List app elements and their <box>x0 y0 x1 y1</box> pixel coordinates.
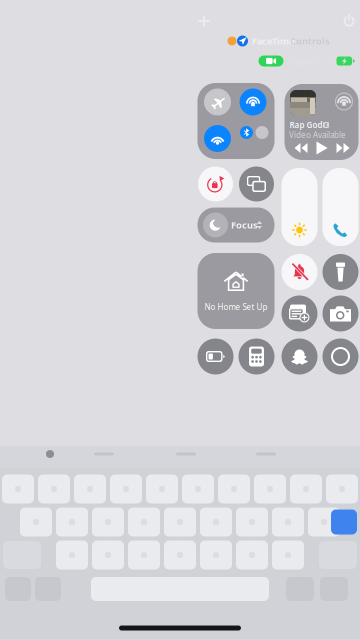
button[interactable]: Airplane Mode <box>204 88 231 115</box>
button[interactable]: Silent Mode <box>281 254 317 290</box>
button[interactable]: Screen Mirroring <box>239 166 274 201</box>
staticText: Video Available <box>289 130 346 140</box>
button[interactable]: AirDrop <box>239 88 266 115</box>
button[interactable]: Home — No Home Set Up <box>197 253 274 329</box>
button[interactable]: Play <box>316 141 327 154</box>
button[interactable]: Bluetooth <box>240 126 253 139</box>
button[interactable]: Screen Recording <box>322 338 358 374</box>
button[interactable]: Wi-Fi <box>204 125 231 152</box>
button[interactable]: Low Power Mode <box>197 338 233 374</box>
button[interactable]: Personal Hotspot <box>255 126 268 139</box>
button[interactable]: New Note <box>281 295 317 331</box>
button[interactable]: Flashlight <box>322 254 358 290</box>
button[interactable]: Brightness <box>281 168 317 246</box>
button[interactable]: Calculator <box>238 338 274 374</box>
staticText: Controls <box>290 35 330 47</box>
button[interactable]: Previous Track <box>294 143 307 153</box>
button[interactable]: Snapchat <box>281 338 317 374</box>
button[interactable]: AirPlay <box>335 93 352 110</box>
staticText: No Home Set Up <box>204 302 267 312</box>
button[interactable]: Focus <box>197 207 274 242</box>
button[interactable]: Volume <box>322 168 358 246</box>
button[interactable]: Rotation Lock <box>198 166 233 201</box>
staticText: Focus <box>231 219 258 231</box>
button[interactable]: Next Track <box>336 143 349 153</box>
staticText: FaceTime <box>252 35 294 47</box>
button[interactable]: Camera <box>322 295 358 331</box>
staticText: Rap God <box>289 120 322 130</box>
